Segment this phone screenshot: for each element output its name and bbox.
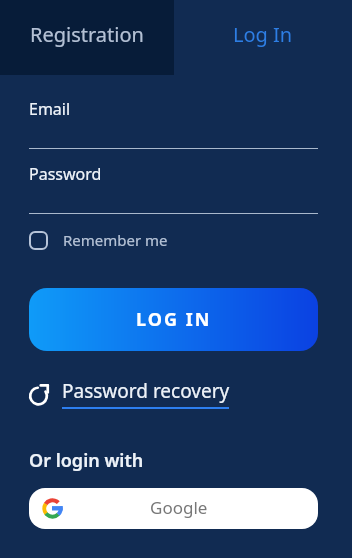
- button[interactable]: Password recovery: [29, 378, 230, 409]
- staticText: Password recovery: [62, 378, 230, 404]
- button[interactable]: Log In: [174, 0, 352, 75]
- staticText: Remember me: [63, 230, 168, 250]
- button[interactable]: Google: [29, 488, 318, 529]
- button[interactable]: Registration: [0, 0, 174, 75]
- staticText: Registration: [30, 21, 144, 48]
- button[interactable]: Remember me: [29, 230, 168, 250]
- staticText: Log In: [233, 21, 293, 48]
- staticText: LOG IN: [136, 307, 212, 332]
- staticText: Password: [29, 163, 102, 185]
- staticText: Google: [150, 496, 208, 519]
- button[interactable]: LOG IN: [29, 288, 318, 351]
- staticText: Email: [29, 98, 71, 120]
- staticText: Or login with: [29, 448, 144, 473]
